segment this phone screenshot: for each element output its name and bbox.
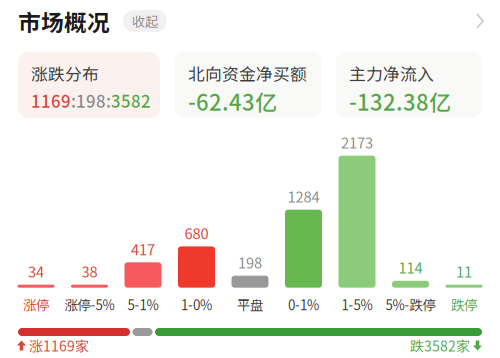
staticText: 680 bbox=[184, 222, 208, 243]
staticText: : bbox=[71, 88, 76, 112]
button[interactable]: 收起 bbox=[123, 10, 167, 32]
staticText: 5%-跌停 bbox=[385, 295, 435, 314]
staticText: 0-1% bbox=[288, 295, 319, 314]
staticText: 198 bbox=[76, 88, 106, 112]
staticText: 1284 bbox=[287, 185, 319, 207]
staticText: 涨1169家 bbox=[29, 335, 89, 356]
staticText: 34 bbox=[28, 260, 44, 282]
staticText: -132.38亿 bbox=[349, 85, 451, 117]
staticText: 11 bbox=[456, 260, 472, 282]
staticText: 3582 bbox=[111, 88, 151, 112]
staticText: 收起 bbox=[132, 11, 158, 31]
staticText: 涨跌分布 bbox=[31, 61, 99, 85]
staticText: 417 bbox=[131, 238, 155, 259]
staticText: 跌停 bbox=[451, 295, 477, 314]
staticText: 114 bbox=[398, 256, 422, 278]
staticText: : bbox=[106, 88, 111, 112]
staticText: 平盘 bbox=[237, 295, 263, 314]
staticText: 涨停-5% bbox=[64, 295, 114, 314]
staticText: 跌3582家 bbox=[410, 335, 470, 356]
staticText: 1-5% bbox=[341, 295, 372, 314]
button[interactable]: 涨跌分布 bbox=[18, 52, 160, 118]
button[interactable]: 主力净流入 bbox=[336, 52, 482, 118]
button[interactable]: 更多 bbox=[473, 10, 487, 32]
staticText: 1-0% bbox=[181, 295, 212, 314]
staticText: 涨停 bbox=[23, 295, 49, 314]
staticText: 5-1% bbox=[127, 295, 158, 314]
staticText: 1169 bbox=[31, 88, 71, 112]
staticText: 38 bbox=[81, 260, 97, 282]
staticText: 市场概况 bbox=[18, 5, 110, 37]
staticText: 主力净流入 bbox=[349, 61, 434, 85]
staticText: 198 bbox=[238, 251, 262, 273]
staticText: -62.43亿 bbox=[188, 85, 277, 117]
staticText: 2173 bbox=[341, 131, 373, 153]
button[interactable]: 北向资金净买额 bbox=[175, 52, 321, 118]
staticText: 北向资金净买额 bbox=[188, 61, 307, 85]
